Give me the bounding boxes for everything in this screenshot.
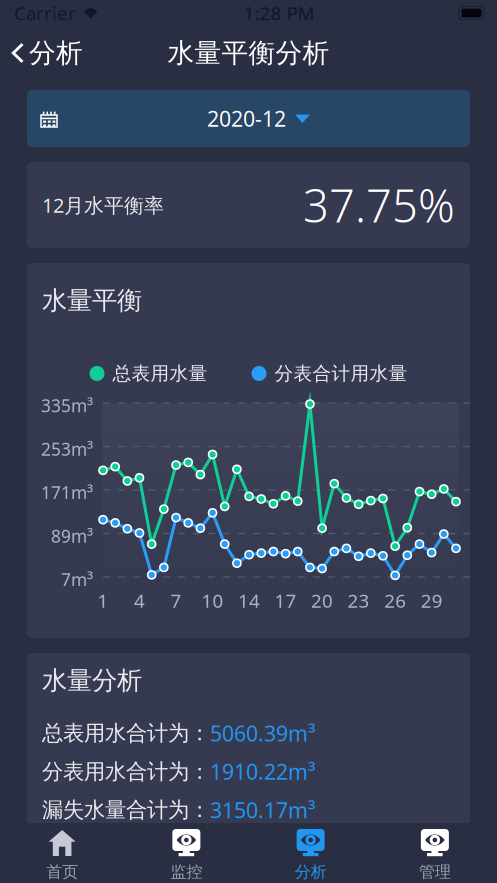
staticText: 26 (384, 588, 406, 613)
staticText: 水量分析 (42, 665, 142, 696)
staticText: 7 (170, 588, 181, 613)
staticText: Carrier (14, 1, 76, 25)
staticText: 171m³ (41, 481, 93, 504)
staticText: 分析 (29, 37, 83, 69)
staticText: 7m³ (61, 568, 93, 591)
staticText: 分表用水合计为： (42, 758, 210, 785)
button[interactable]: 管理 (373, 823, 497, 883)
staticText: 89m³ (51, 524, 93, 547)
staticText: 总表用水合计为： (42, 720, 210, 746)
staticText: 总表用水量 (112, 362, 207, 385)
staticText: 分表合计用水量 (274, 362, 407, 385)
staticText: 37.75% (303, 175, 455, 235)
staticText: 监控 (170, 862, 202, 882)
staticText: 1:28 PM (243, 1, 314, 25)
staticText: 水量平衡 (42, 285, 142, 316)
button[interactable]: 分析 (0, 31, 95, 75)
staticText: 2020-12 (207, 104, 286, 133)
staticText: 23 (348, 588, 370, 613)
staticText: 10 (202, 588, 224, 613)
button[interactable]: 分析 (248, 823, 373, 883)
staticText: 1910.22m³ (210, 757, 315, 786)
staticText: 1 (97, 588, 108, 613)
staticText: 14 (238, 588, 260, 613)
staticText: 29 (421, 588, 443, 613)
button[interactable]: 监控 (124, 823, 248, 883)
staticText: 5060.39m³ (210, 719, 315, 747)
staticText: 首页 (46, 862, 78, 882)
staticText: 335m³ (41, 394, 93, 417)
staticText: 4 (134, 588, 145, 613)
staticText: 20 (311, 588, 333, 613)
button[interactable]: 首页 (0, 823, 124, 883)
staticText: 水量平衡分析 (167, 37, 329, 69)
staticText: 漏失水量合计为： (42, 797, 210, 823)
staticText: 17 (275, 588, 297, 613)
staticText: 管理 (419, 862, 451, 882)
staticText: 分析 (295, 862, 327, 882)
button[interactable]: 2020-12 (27, 90, 470, 147)
staticText: 253m³ (41, 437, 93, 460)
staticText: 12月水平衡率 (42, 192, 164, 218)
staticText: 3150.17m³ (210, 796, 315, 824)
